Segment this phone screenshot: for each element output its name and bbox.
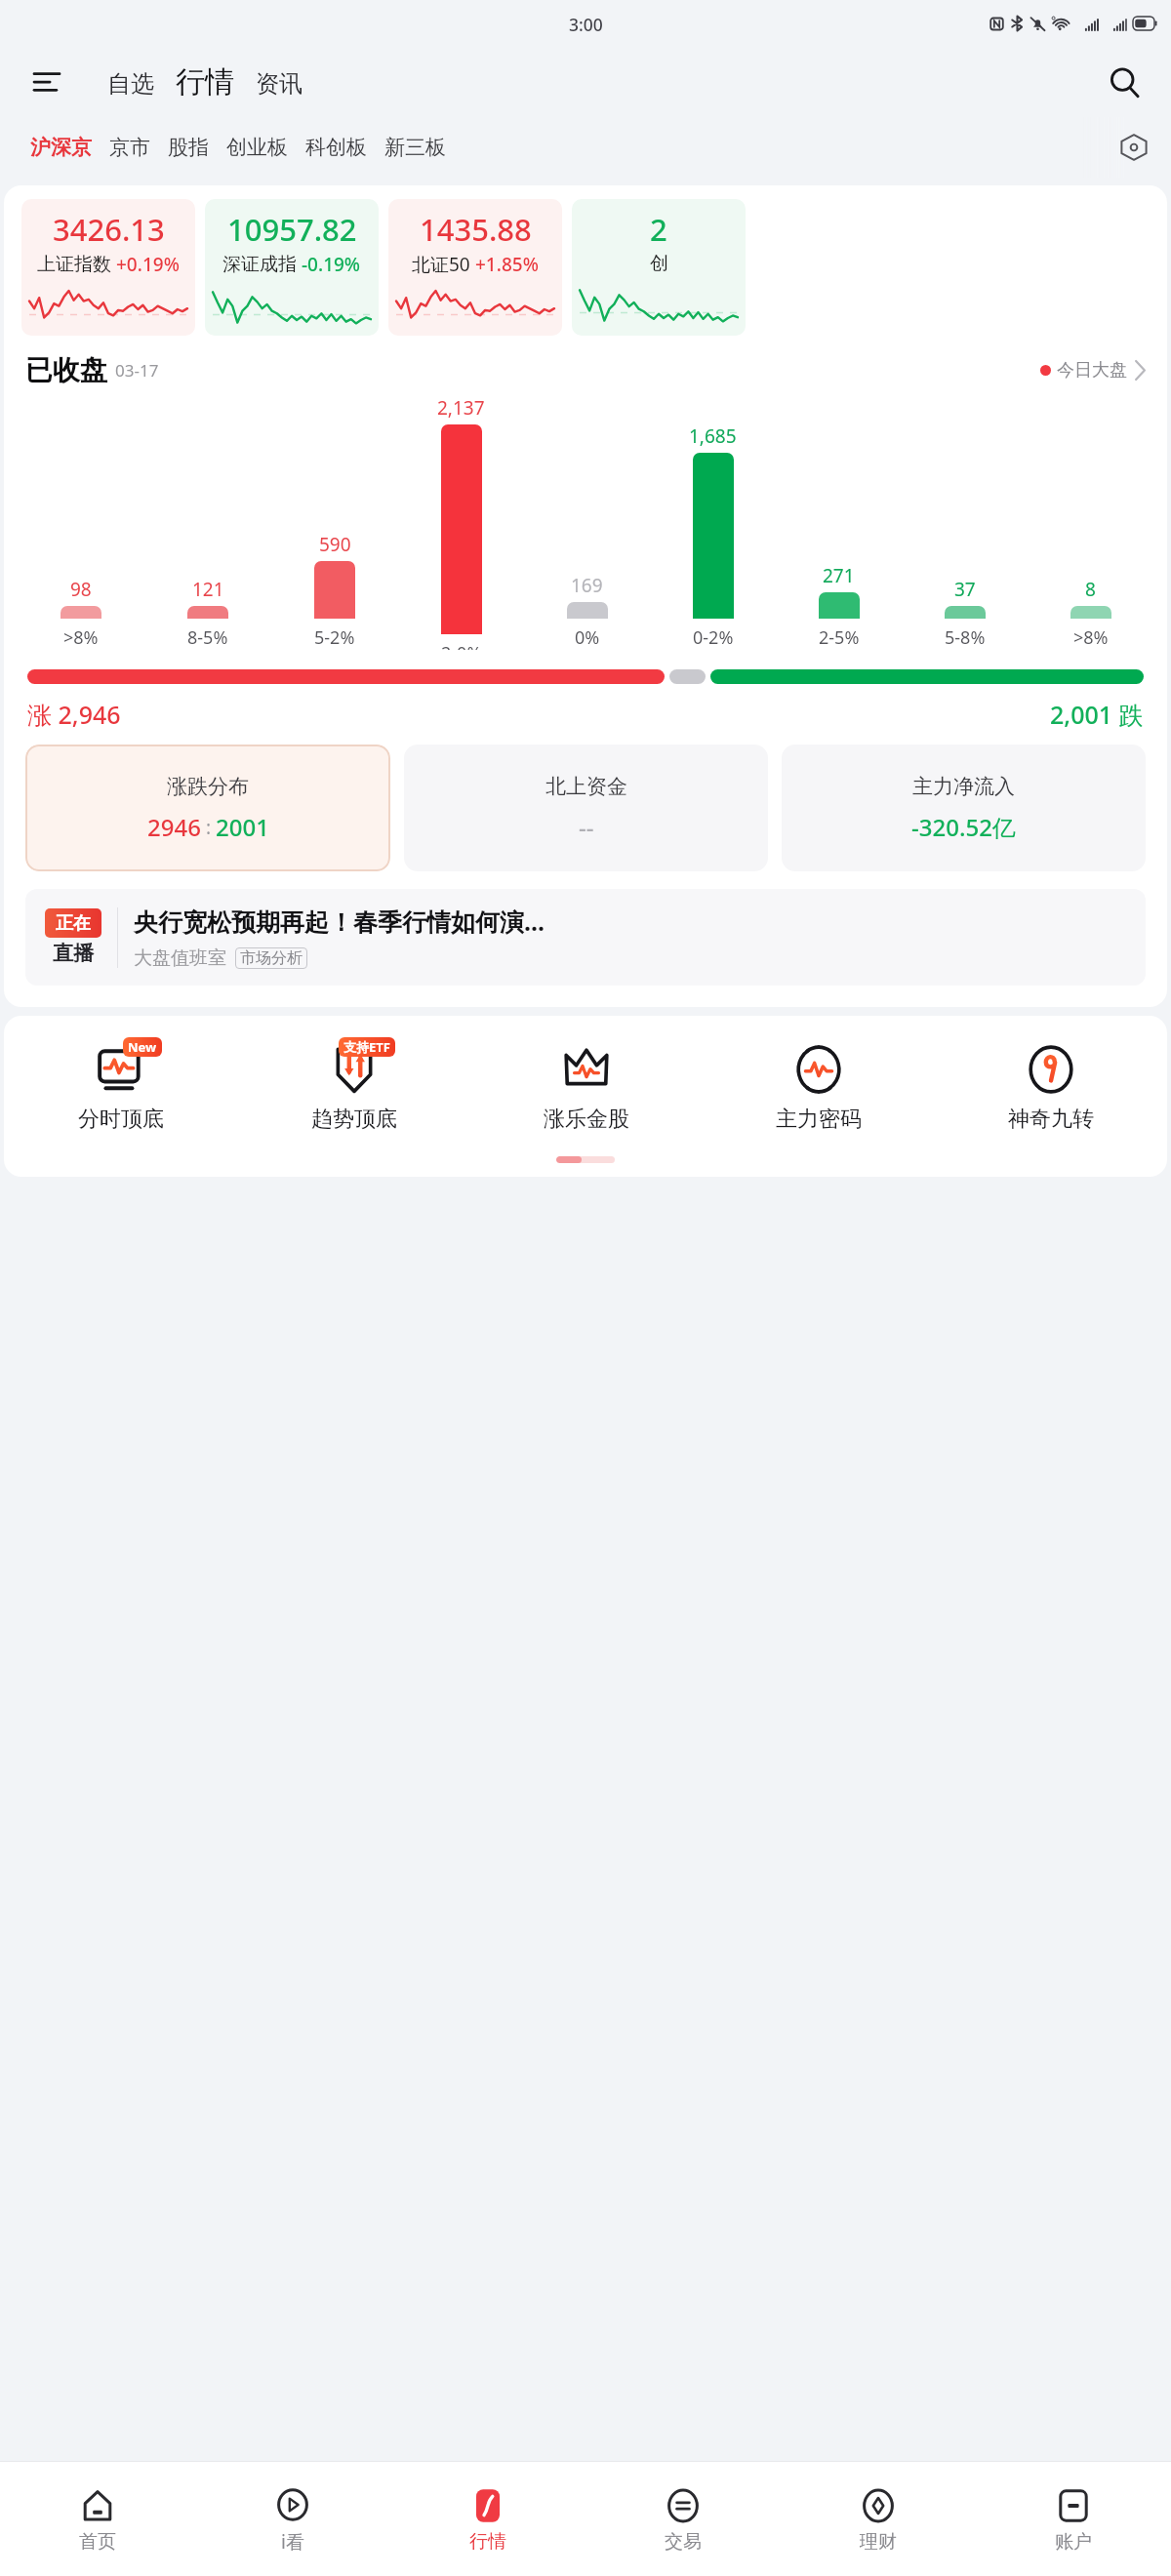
button[interactable]: 神奇九转 [935,1037,1167,1135]
button[interactable]: 新三板 [376,129,455,166]
button[interactable]: 首页 [0,2462,195,2576]
staticText: 2,001 跌 [1050,698,1144,731]
staticText: 0% [575,625,600,650]
button[interactable]: 交易 [585,2462,781,2576]
button[interactable]: 资讯 [250,65,308,102]
staticText: 2-0% [441,641,482,650]
staticText: 98 [70,577,92,602]
staticText: 今日大盘 [1057,359,1127,382]
staticText: 市场分析 [240,948,303,968]
staticText: 上证指数 [37,253,111,276]
staticText: -- [579,811,594,843]
staticText: 3:00 [569,13,603,36]
staticText: 神奇九转 [1008,1106,1094,1133]
staticText: 支持ETF [343,1038,390,1056]
staticText: 8 [1085,577,1096,602]
button[interactable]: i看 [195,2462,390,2576]
staticText: -0.19% [302,252,361,277]
staticText: 0-2% [693,625,734,650]
button[interactable]: 账户 [976,2462,1171,2576]
staticText: 沪深京 [30,135,92,160]
staticText: 科创板 [305,135,367,160]
staticText: 2 [650,209,667,250]
staticText: 创业板 [226,135,288,160]
button[interactable]: 理财 [781,2462,976,2576]
staticText: 5-8% [945,625,986,650]
staticText: 8-5% [187,625,228,650]
staticText: 行情 [176,63,234,101]
staticText: 主力净流入 [912,774,1015,799]
staticText: 北证50 [412,252,470,277]
staticText: -320.52亿 [911,811,1016,843]
staticText: 深证成指 [222,253,297,276]
staticText: 新三板 [384,135,446,160]
staticText: 涨跌分布 [167,774,249,799]
button[interactable]: 涨跌分布 [25,745,390,871]
staticText: i看 [281,2529,304,2555]
staticText: +0.19% [116,252,180,277]
staticText: 大盘值班室 [134,946,226,970]
button[interactable]: New [4,1037,237,1135]
button[interactable]: Menu [25,60,68,103]
button[interactable]: 自选 [101,65,160,102]
staticText: 10957.82 [227,209,357,250]
button[interactable]: 10957.82 [205,199,379,336]
staticText: 5-2% [314,625,355,650]
staticText: >8% [1073,625,1109,650]
staticText: : [201,815,216,840]
staticText: 分时顶底 [78,1106,164,1133]
staticText: 2,137 [437,395,485,421]
button[interactable]: 支持ETF [237,1037,470,1135]
staticText: +1.85% [475,252,539,277]
button[interactable]: 科创板 [297,129,376,166]
button[interactable]: 沪深京 [21,129,101,166]
staticText: 正在 [56,912,91,935]
staticText: 趋势顶底 [311,1106,397,1133]
staticText: 北上资金 [545,774,627,799]
button[interactable]: 北上资金 [404,745,768,871]
staticText: 3426.13 [53,209,165,250]
staticText: 首页 [79,2530,116,2554]
button[interactable]: 涨乐金股 [470,1037,703,1135]
staticText: 590 [319,532,351,557]
staticText: 涨乐金股 [544,1106,629,1133]
staticText: 主力密码 [776,1106,862,1133]
staticText: 121 [192,577,224,602]
button[interactable]: 主力密码 [703,1037,935,1135]
staticText: 37 [954,577,976,602]
staticText: 169 [571,573,603,598]
staticText: 1,685 [689,423,737,449]
staticText: 2946 [147,811,201,843]
button[interactable]: 3426.13 [21,199,195,336]
button[interactable]: 主力净流入 [782,745,1146,871]
button[interactable]: 今日大盘 [1036,355,1150,385]
button[interactable]: Search [1101,59,1148,105]
staticText: 自选 [107,69,154,99]
staticText: 理财 [860,2530,897,2554]
staticText: 央行宽松预期再起！春季行情如何演... [134,905,545,938]
staticText: 2001 [216,811,269,843]
staticText: 03-17 [115,359,159,382]
staticText: 创 [650,252,668,275]
button[interactable]: 1435.88 [388,199,562,336]
button[interactable]: 京市 [101,129,159,166]
staticText: 行情 [469,2530,506,2554]
button[interactable]: Settings [1110,124,1157,171]
staticText: 股指 [168,135,209,160]
staticText: 京市 [109,135,150,160]
button[interactable]: 创业板 [218,129,297,166]
staticText: New [128,1038,157,1056]
staticText: 271 [823,563,855,588]
staticText: 已收盘 [25,353,107,387]
button[interactable]: 行情 [390,2462,585,2576]
staticText: 2-5% [819,625,860,650]
button[interactable]: 2 [572,199,746,336]
button[interactable]: 行情 [170,61,240,102]
staticText: 1435.88 [420,209,532,250]
staticText: 账户 [1055,2530,1092,2554]
button[interactable]: 正在 [25,889,1146,986]
staticText: 交易 [665,2530,702,2554]
button[interactable]: 股指 [159,129,218,166]
staticText: >8% [63,625,99,650]
staticText: 直播 [53,941,94,966]
